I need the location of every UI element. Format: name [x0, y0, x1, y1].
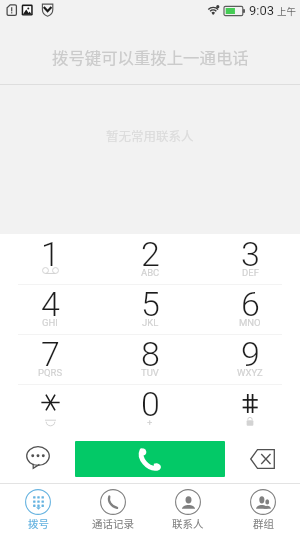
staticText: 暂无常用联系人	[106, 126, 194, 144]
staticText: GHI	[42, 317, 58, 328]
button[interactable]: 通话记录	[75, 484, 150, 533]
staticText: ABC	[141, 267, 160, 278]
staticText: 3	[241, 234, 260, 274]
button[interactable]: star	[0, 384, 100, 434]
staticText: 0	[141, 384, 160, 424]
button[interactable]: Delete	[225, 434, 300, 483]
staticText: 8	[141, 334, 160, 374]
staticText: 9:03	[249, 3, 275, 18]
button[interactable]: 8	[100, 334, 200, 384]
other: pound	[242, 394, 258, 413]
staticText: 联系人	[172, 516, 204, 531]
button[interactable]: Call	[75, 441, 225, 477]
button[interactable]: 7	[0, 334, 100, 384]
staticText: PQRS	[38, 367, 63, 378]
staticText: 4	[41, 284, 60, 324]
staticText: 拨号键可以重拨上一通电话	[52, 45, 249, 69]
staticText: 6	[241, 284, 260, 324]
staticText: WXYZ	[237, 367, 263, 378]
staticText: +	[147, 417, 153, 428]
button[interactable]: 6	[200, 284, 300, 334]
staticText: 7	[41, 334, 60, 374]
staticText: 1	[41, 234, 60, 274]
button[interactable]: 3	[200, 234, 300, 284]
other: star	[41, 393, 60, 412]
button[interactable]: 拨号	[0, 484, 75, 533]
staticText: 9	[241, 334, 260, 374]
button[interactable]: Message	[0, 434, 75, 483]
button[interactable]: 0	[100, 384, 200, 434]
staticText: 上午	[277, 4, 297, 18]
button[interactable]: 联系人	[150, 484, 225, 533]
staticText: 拨号	[28, 516, 49, 531]
button[interactable]: 2	[100, 234, 200, 284]
staticText: 通话记录	[92, 516, 134, 531]
staticText: TUV	[141, 367, 159, 378]
button[interactable]: pound	[200, 384, 300, 434]
button[interactable]: 5	[100, 284, 200, 334]
staticText: 5	[141, 284, 160, 324]
staticText: 2	[141, 234, 160, 274]
staticText: MNO	[239, 317, 261, 328]
staticText: 群组	[253, 516, 274, 531]
button[interactable]: 4	[0, 284, 100, 334]
button[interactable]: 群组	[225, 484, 300, 533]
staticText: DEF	[242, 267, 259, 278]
button[interactable]: 1	[0, 234, 100, 284]
staticText: JKL	[142, 317, 159, 328]
button[interactable]: 9	[200, 334, 300, 384]
